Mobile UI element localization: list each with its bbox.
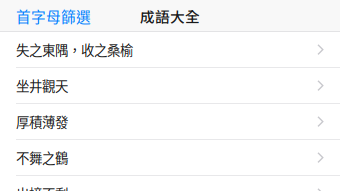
staticText: 出榜不剩	[16, 184, 68, 191]
button[interactable]: 首字母篩選	[0, 0, 107, 32]
button[interactable]: 出榜不剩	[0, 176, 340, 191]
button[interactable]: 不舞之鶴	[0, 140, 340, 176]
staticText: 成語大全	[140, 5, 200, 27]
staticText: 失之東隅，收之桑榆	[16, 40, 133, 59]
staticText: 首字母篩選	[16, 5, 91, 27]
button[interactable]: 厚積薄發	[0, 104, 340, 140]
staticText: 厚積薄發	[16, 112, 68, 131]
button[interactable]: 坐井觀天	[0, 68, 340, 104]
staticText: 坐井觀天	[16, 76, 68, 95]
button[interactable]: 失之東隅，收之桑榆	[0, 32, 340, 68]
staticText: 不舞之鶴	[16, 148, 68, 167]
